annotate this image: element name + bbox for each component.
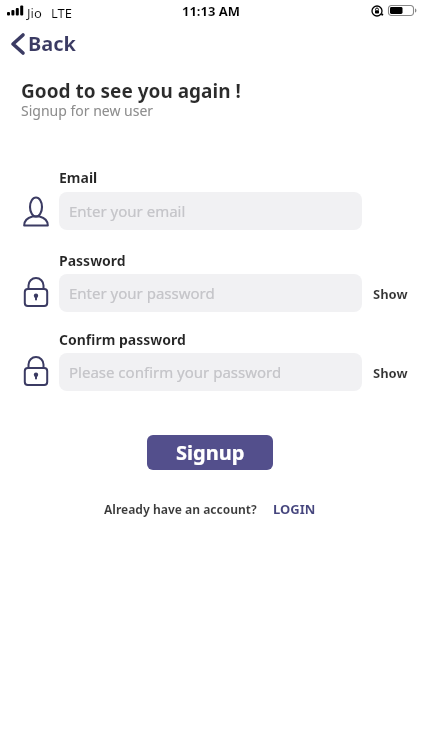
staticText: Please confirm your password [69, 362, 282, 382]
staticText: Show [373, 364, 408, 382]
staticText: Signup [176, 439, 245, 466]
button[interactable]: LOGIN [273, 500, 316, 518]
button[interactable]: Please confirm your password [59, 353, 362, 391]
button[interactable]: Signup [147, 435, 273, 470]
button[interactable]: Enter your password [59, 274, 362, 312]
staticText: 11:13 AM [182, 2, 241, 20]
staticText: LTE [51, 4, 73, 22]
button[interactable]: Back [10, 30, 76, 57]
staticText: Jio [27, 4, 42, 22]
staticText: Email [59, 168, 98, 187]
staticText: Signup for new user [21, 101, 154, 120]
staticText: Enter your email [69, 201, 186, 221]
staticText: Already have an account? [104, 501, 257, 517]
staticText: LOGIN [273, 500, 316, 518]
staticText: Good to see you again ! [21, 78, 241, 104]
staticText: Back [28, 30, 76, 57]
staticText: Password [59, 251, 126, 270]
button[interactable]: Show [373, 364, 408, 382]
staticText: Show [373, 285, 408, 303]
staticText: Enter your password [69, 283, 215, 303]
button[interactable]: Show [373, 285, 408, 303]
button[interactable]: Enter your email [59, 192, 362, 230]
staticText: Confirm password [59, 330, 186, 349]
